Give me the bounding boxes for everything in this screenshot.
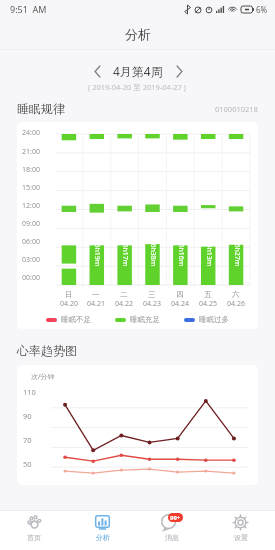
staticText: 4月第4周 xyxy=(113,63,163,79)
staticText: 6h17m xyxy=(119,243,129,266)
staticText: 消息 xyxy=(165,533,179,542)
staticText: 三 xyxy=(148,290,156,299)
staticText: 04.20 xyxy=(60,299,78,309)
other: 分析 xyxy=(94,514,111,531)
staticText: 首页 xyxy=(27,533,41,542)
other: 设置 xyxy=(232,514,249,531)
button[interactable]: 首页 xyxy=(0,510,68,550)
staticText: 04.21 xyxy=(87,299,105,309)
staticText: 一 xyxy=(92,290,100,299)
staticText: 90 xyxy=(23,411,32,421)
staticText: 6h19m xyxy=(91,243,101,266)
staticText: 0100010218 xyxy=(215,104,258,114)
staticText: 睡眠过多 xyxy=(199,315,229,324)
staticText: 06:00 xyxy=(22,237,40,247)
other: 首页 xyxy=(26,514,43,531)
staticText: 6h13m xyxy=(203,243,213,266)
staticText: 6h38m xyxy=(147,243,157,266)
button[interactable]: 24:00 xyxy=(17,122,258,329)
staticText: 6h27m xyxy=(231,243,241,266)
staticText: 四 xyxy=(176,290,184,299)
staticText: 睡眠充足 xyxy=(130,315,160,324)
other: 消息 xyxy=(160,514,177,531)
staticText: 21:00 xyxy=(22,147,40,157)
staticText: 00:00 xyxy=(22,273,40,283)
staticText: 设置 xyxy=(234,533,248,542)
staticText: 04.25 xyxy=(199,299,217,309)
staticText: 二 xyxy=(120,290,128,299)
staticText: 24:00 xyxy=(22,128,40,138)
staticText: 五 xyxy=(204,290,212,299)
button[interactable]: Previous week xyxy=(87,61,107,81)
staticText: 04.23 xyxy=(143,299,161,309)
staticText: 99+ xyxy=(170,514,181,522)
staticText: 03:00 xyxy=(22,255,40,265)
staticText: 15:00 xyxy=(22,183,40,193)
button[interactable]: 消息 xyxy=(137,510,206,550)
staticText: ( 2019-04-20 至 2019-04-27 ) xyxy=(88,82,187,92)
staticText: 09:00 xyxy=(22,219,40,229)
staticText: 18:00 xyxy=(22,165,40,175)
button[interactable]: 分析 xyxy=(0,18,275,49)
staticText: 04.24 xyxy=(171,299,189,309)
staticText: 12:00 xyxy=(22,201,40,211)
staticText: 04.22 xyxy=(115,299,133,309)
button[interactable]: 设置 xyxy=(206,510,275,550)
button[interactable]: Next week xyxy=(169,61,189,81)
staticText: 9:51 AM xyxy=(10,3,47,15)
staticText: 次/分钟 xyxy=(31,372,55,382)
staticText: 6% xyxy=(256,4,268,15)
staticText: 睡眠规律 xyxy=(17,101,65,116)
button[interactable]: 分析 xyxy=(68,510,137,550)
staticText: 日 xyxy=(65,290,73,299)
staticText: 110 xyxy=(23,387,36,397)
staticText: 睡眠不足 xyxy=(61,315,91,324)
staticText: 分析 xyxy=(125,26,151,42)
staticText: 6h16m xyxy=(175,243,185,266)
staticText: 心率趋势图 xyxy=(17,343,77,358)
button[interactable]: 次/分钟 xyxy=(17,365,258,485)
staticText: 六 xyxy=(232,290,240,299)
staticText: 50 xyxy=(23,459,32,469)
staticText: 04.26 xyxy=(227,299,245,309)
staticText: 分析 xyxy=(96,533,110,542)
staticText: 70 xyxy=(23,435,32,445)
